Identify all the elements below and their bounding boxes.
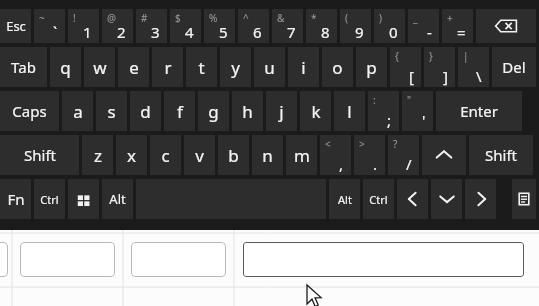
button[interactable]: $ <box>170 9 201 43</box>
button[interactable]: _ <box>408 9 439 43</box>
button[interactable]: e <box>118 47 149 87</box>
staticText: 6 <box>253 22 262 42</box>
staticText: f <box>177 100 183 123</box>
button[interactable]: { <box>390 47 421 87</box>
button[interactable]: Backspace <box>476 9 536 43</box>
button[interactable]: Caps <box>0 91 59 131</box>
button[interactable]: | <box>458 47 489 87</box>
staticText: j <box>279 100 284 123</box>
staticText: > <box>359 137 365 151</box>
button[interactable]: ? <box>388 135 419 175</box>
button[interactable]: ! <box>68 9 99 43</box>
button[interactable]: > <box>354 135 385 175</box>
button[interactable]: ^ <box>238 9 269 43</box>
staticText: " <box>407 93 412 107</box>
staticText: < <box>325 137 331 151</box>
button[interactable]: u <box>254 47 285 87</box>
button[interactable]: Esc <box>0 9 31 43</box>
button[interactable]: h <box>232 91 263 131</box>
button[interactable]: y <box>220 47 251 87</box>
button[interactable]: c <box>150 135 181 175</box>
button[interactable]: i <box>288 47 319 87</box>
button[interactable] <box>0 242 8 277</box>
button[interactable]: Windows <box>68 179 99 219</box>
button[interactable]: Menu <box>512 179 536 219</box>
button[interactable]: Ctrl <box>34 179 65 219</box>
staticText: s <box>107 100 116 123</box>
button[interactable]: b <box>218 135 249 175</box>
button[interactable]: Down arrow <box>431 179 462 219</box>
button[interactable]: ~ <box>34 9 65 43</box>
button[interactable]: Left arrow <box>397 179 428 219</box>
staticText: # <box>141 11 148 25</box>
button[interactable]: * <box>306 9 337 43</box>
button[interactable]: l <box>334 91 365 131</box>
button[interactable]: d <box>130 91 161 131</box>
staticText: x <box>127 144 136 167</box>
button[interactable]: & <box>272 9 303 43</box>
button[interactable]: g <box>198 91 229 131</box>
button[interactable]: t <box>186 47 217 87</box>
staticText: k <box>311 100 321 123</box>
button[interactable]: a <box>62 91 93 131</box>
button[interactable] <box>20 242 115 277</box>
button[interactable]: + <box>442 9 473 43</box>
staticText: b <box>228 144 239 167</box>
staticText: r <box>164 56 172 79</box>
staticText: ` <box>53 22 58 42</box>
staticText: Tab <box>11 57 36 77</box>
staticText: p <box>366 56 377 79</box>
button[interactable]: " <box>402 91 433 131</box>
button[interactable]: m <box>286 135 317 175</box>
button[interactable]: Shift <box>469 135 533 175</box>
staticText: % <box>209 11 218 25</box>
button[interactable]: Tab <box>0 47 47 87</box>
staticText: } <box>429 49 433 63</box>
button[interactable]: Ctrl <box>363 179 394 219</box>
button[interactable]: n <box>252 135 283 175</box>
staticText: / <box>406 154 412 174</box>
button[interactable]: < <box>320 135 351 175</box>
button[interactable]: Alt <box>329 179 360 219</box>
staticText: i <box>301 56 306 79</box>
button[interactable]: Fn <box>0 179 31 219</box>
button[interactable] <box>243 242 524 277</box>
button[interactable]: w <box>84 47 115 87</box>
staticText: | <box>463 49 469 63</box>
button[interactable]: Alt <box>102 179 133 219</box>
button[interactable]: Up arrow <box>422 135 466 175</box>
button[interactable]: k <box>300 91 331 131</box>
button[interactable]: x <box>116 135 147 175</box>
staticText: : <box>373 93 376 107</box>
button[interactable]: ) <box>374 9 405 43</box>
button[interactable]: r <box>152 47 183 87</box>
staticText: o <box>332 56 343 79</box>
staticText: w <box>93 56 107 79</box>
button[interactable]: Enter <box>436 91 522 131</box>
staticText: Shift <box>485 145 517 165</box>
staticText: 1 <box>83 22 92 42</box>
button[interactable]: # <box>136 9 167 43</box>
button[interactable]: f <box>164 91 195 131</box>
button[interactable]: % <box>204 9 235 43</box>
button[interactable]: o <box>322 47 353 87</box>
button[interactable]: s <box>96 91 127 131</box>
button[interactable]: q <box>50 47 81 87</box>
button[interactable]: Shift <box>0 135 79 175</box>
staticText: Del <box>502 57 526 77</box>
button[interactable]: z <box>82 135 113 175</box>
button[interactable]: Right arrow <box>465 179 496 219</box>
button[interactable]: Del <box>492 47 536 87</box>
staticText: - <box>427 22 432 42</box>
staticText: Enter <box>460 101 498 121</box>
staticText: l <box>347 100 352 123</box>
button[interactable]: v <box>184 135 215 175</box>
button[interactable]: p <box>356 47 387 87</box>
button[interactable] <box>131 242 226 277</box>
button[interactable]: : <box>368 91 399 131</box>
button[interactable]: ( <box>340 9 371 43</box>
button[interactable]: } <box>424 47 455 87</box>
button[interactable]: j <box>266 91 297 131</box>
button[interactable]: @ <box>102 9 133 43</box>
